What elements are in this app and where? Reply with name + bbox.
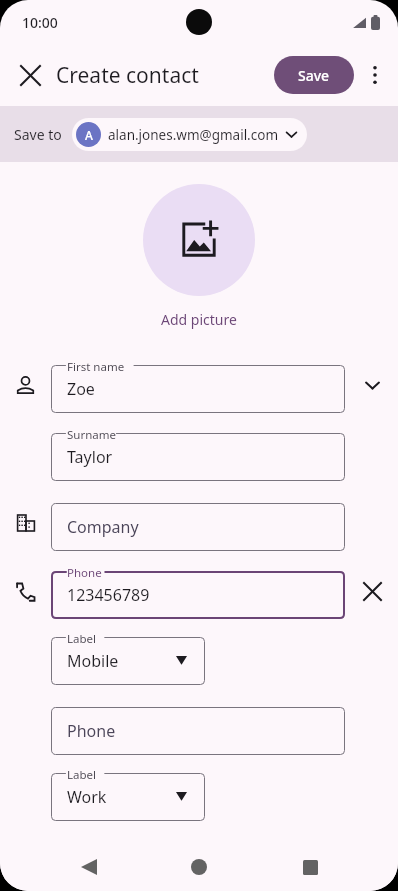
staticText: Surname	[67, 427, 116, 443]
staticText: 10:00	[22, 13, 58, 32]
button[interactable]: Label	[51, 629, 205, 685]
button[interactable]: Company	[51, 495, 345, 551]
button[interactable]: Label	[51, 765, 205, 821]
button[interactable]: Surname	[51, 425, 345, 481]
button[interactable]: Save	[274, 56, 354, 94]
staticText: Label	[67, 631, 97, 647]
staticText: Save to	[14, 125, 62, 144]
staticText: Save	[298, 66, 330, 85]
button[interactable]: First name	[51, 357, 345, 413]
staticText: Label	[67, 767, 97, 783]
button[interactable]: Back	[67, 845, 111, 889]
staticText: Create contact	[56, 61, 199, 90]
staticText: Add picture	[161, 310, 237, 329]
button[interactable]: Add picture	[153, 308, 245, 331]
staticText: Phone	[67, 565, 102, 581]
button[interactable]: Expand name fields	[352, 365, 392, 405]
staticText: Phone	[67, 720, 116, 742]
staticText: 123456789	[67, 584, 150, 606]
staticText: alan.jones.wm@gmail.com	[108, 126, 279, 144]
button[interactable]: Add picture	[143, 184, 255, 296]
button[interactable]: Phone	[51, 699, 345, 755]
staticText: Mobile	[67, 650, 119, 672]
button[interactable]: Clear phone	[352, 571, 392, 611]
staticText: Company	[67, 516, 139, 538]
button[interactable]: More options	[354, 54, 396, 96]
staticText: First name	[67, 359, 125, 375]
staticText: A	[85, 127, 93, 143]
staticText: Work	[67, 786, 107, 808]
button[interactable]: Phone	[51, 563, 345, 619]
staticText: Zoe	[67, 378, 95, 400]
button[interactable]: Home	[177, 845, 221, 889]
button[interactable]: Close	[8, 53, 52, 97]
staticText: Taylor	[67, 446, 113, 468]
button[interactable]: Recents	[288, 845, 332, 889]
button[interactable]: A	[72, 118, 307, 151]
